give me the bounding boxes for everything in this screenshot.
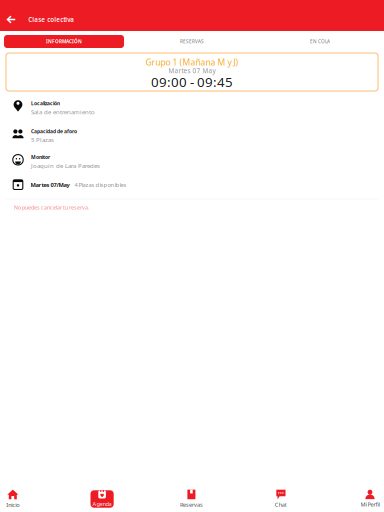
staticText: Clase colectiva xyxy=(28,15,74,24)
staticText: 5 Plazas xyxy=(31,136,54,144)
staticText: RESERVAS xyxy=(180,38,204,45)
staticText: Capacidad de aforo xyxy=(31,128,77,135)
staticText: Martes 07/May xyxy=(30,181,69,189)
staticText: Inicio xyxy=(6,501,19,508)
staticText: 4 Plazas disponibles xyxy=(74,181,126,189)
button[interactable]: Agenda xyxy=(86,490,118,508)
staticText: Mi Perfil xyxy=(360,501,379,508)
button[interactable]: RESERVAS xyxy=(128,35,256,48)
staticText: EN COLA xyxy=(310,38,330,45)
staticText: Agenda xyxy=(93,500,112,507)
button[interactable]: Mi Perfil xyxy=(354,490,384,508)
staticText: Monitor xyxy=(31,154,50,160)
staticText: INFORMACIÓN xyxy=(46,38,82,45)
staticText: Martes 07 May xyxy=(168,67,215,75)
staticText: Grupo 1 (Mañana M y J) xyxy=(145,56,238,68)
button[interactable]: Back xyxy=(4,11,18,27)
button[interactable]: Inicio xyxy=(0,490,29,508)
button[interactable]: EN COLA xyxy=(256,35,384,48)
staticText: 09:00 - 09:45 xyxy=(151,73,233,91)
button[interactable]: Reservas xyxy=(175,490,207,508)
staticText: No puedes cancelar tu reserva. xyxy=(14,204,89,211)
staticText: Joaquín de Lara Paredes xyxy=(31,161,100,170)
staticText: Sala de entrenamiento xyxy=(31,108,95,116)
staticText: Localización xyxy=(31,100,60,107)
button[interactable]: INFORMACIÓN xyxy=(0,35,128,48)
staticText: Reservas xyxy=(180,501,203,508)
staticText: Chat xyxy=(275,501,287,508)
button[interactable]: Chat xyxy=(265,490,297,508)
